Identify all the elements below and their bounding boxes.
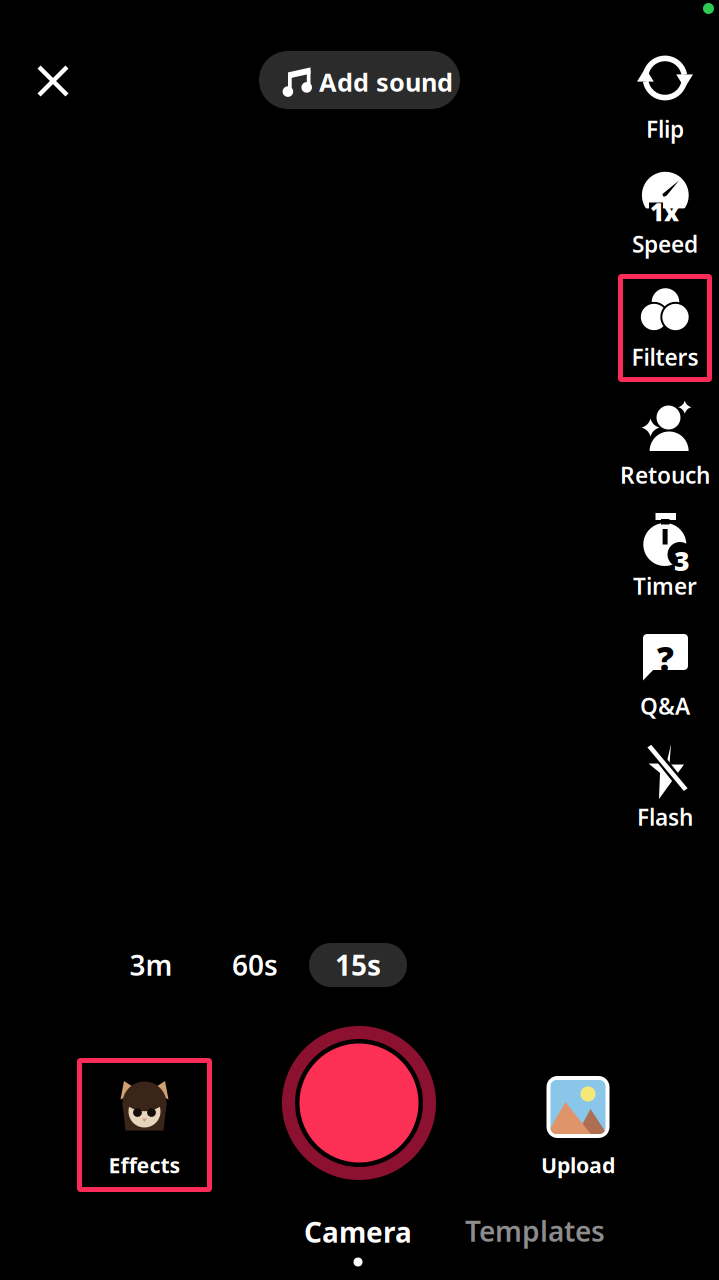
staticText: Retouch [620,460,710,490]
button[interactable]: Flip [618,46,712,154]
staticText: Flash [637,802,693,832]
button[interactable]: 60s [216,943,294,987]
button[interactable]: 1x [618,161,712,269]
button[interactable]: Templates [445,1216,625,1246]
button[interactable]: 15s [309,943,407,987]
button[interactable]: Camera [283,1216,433,1274]
button[interactable]: Flash [618,734,712,842]
staticText: Q&A [640,691,690,721]
staticText: Upload [541,1151,615,1179]
staticText: Add sound [319,65,453,99]
staticText: Flip [646,114,684,144]
button[interactable]: Upload [513,1076,643,1194]
button[interactable]: 3m [112,943,190,987]
staticText: ? [657,636,674,680]
staticText: Filters [631,342,698,372]
button[interactable]: Retouch [618,392,712,500]
staticText: Effects [108,1151,180,1179]
staticText: Camera [304,1213,412,1251]
staticText: 3m [129,946,172,984]
staticText: Templates [465,1212,605,1250]
button[interactable]: 3 [618,503,712,611]
staticText: Speed [632,229,698,259]
staticText: 1x [650,196,679,228]
button[interactable]: Effects [77,1058,212,1192]
staticText: 3 [674,543,690,578]
button[interactable]: Close [19,47,87,115]
button[interactable]: ? [618,623,712,731]
staticText: 60s [232,946,278,984]
button[interactable]: Add sound [259,51,460,109]
button[interactable]: Record [282,1026,436,1180]
staticText: Timer [633,571,697,601]
staticText: 15s [335,946,381,984]
button[interactable]: Filters [618,274,712,382]
